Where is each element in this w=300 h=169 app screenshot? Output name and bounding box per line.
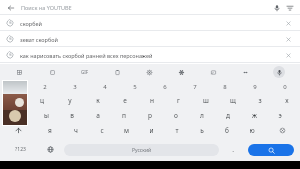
button[interactable]: скорбей bbox=[0, 15, 300, 31]
staticText: л bbox=[200, 111, 204, 120]
button[interactable]: а bbox=[85, 108, 111, 123]
staticText: . bbox=[232, 145, 234, 154]
button[interactable]: х bbox=[273, 93, 300, 108]
button[interactable]: Изменить размер bbox=[229, 64, 261, 80]
button[interactable]: ?123 bbox=[4, 140, 37, 159]
button[interactable]: GIF bbox=[69, 64, 101, 80]
button[interactable]: Стикеры bbox=[36, 64, 69, 80]
staticText: Русский bbox=[132, 147, 152, 154]
button[interactable]: 4 bbox=[90, 80, 120, 93]
button[interactable]: Голосовой поиск bbox=[270, 1, 283, 14]
staticText: ц bbox=[40, 96, 44, 105]
staticText: 3 bbox=[73, 83, 77, 91]
button[interactable]: 2 bbox=[30, 80, 60, 93]
staticText: щ bbox=[230, 96, 236, 105]
button[interactable]: ы bbox=[33, 108, 59, 123]
staticText: м bbox=[124, 126, 129, 135]
button[interactable]: 7 bbox=[180, 80, 210, 93]
button[interactable]: Буфер обмена bbox=[101, 64, 133, 80]
button[interactable]: г bbox=[165, 93, 192, 108]
staticText: в bbox=[70, 111, 74, 120]
button[interactable]: й bbox=[0, 93, 28, 108]
staticText: у bbox=[68, 96, 72, 105]
button[interactable]: Русский bbox=[64, 144, 219, 156]
staticText: 6 bbox=[163, 83, 167, 91]
button[interactable]: Настройки bbox=[133, 64, 165, 80]
button[interactable]: 8 bbox=[210, 80, 240, 93]
staticText: Поиск на YOUTUBE bbox=[21, 4, 270, 11]
button[interactable]: щ bbox=[219, 93, 246, 108]
button[interactable]: 6 bbox=[150, 80, 180, 93]
button[interactable]: ф bbox=[7, 108, 33, 123]
staticText: ь bbox=[200, 126, 204, 135]
button[interactable]: Голосовой ввод bbox=[261, 64, 297, 80]
button[interactable]: Темы bbox=[3, 64, 36, 80]
button[interactable]: 0 bbox=[270, 80, 300, 93]
button[interactable]: у bbox=[56, 93, 84, 108]
button[interactable]: я bbox=[37, 123, 63, 138]
button[interactable]: п bbox=[111, 108, 137, 123]
staticText: с bbox=[100, 126, 104, 135]
staticText: ч bbox=[74, 126, 78, 135]
button[interactable]: е bbox=[111, 93, 138, 108]
staticText: скорбей bbox=[20, 20, 282, 27]
staticText: 8 bbox=[223, 83, 227, 91]
staticText: я bbox=[48, 126, 52, 135]
staticText: х bbox=[285, 96, 289, 105]
staticText: зеват скорбой bbox=[20, 36, 282, 43]
staticText: ф bbox=[18, 111, 23, 120]
button[interactable]: т bbox=[164, 123, 189, 138]
button[interactable]: р bbox=[137, 108, 163, 123]
staticText: 9 bbox=[253, 83, 257, 91]
button[interactable]: о bbox=[163, 108, 189, 123]
button[interactable]: ц bbox=[28, 93, 56, 108]
staticText: е bbox=[123, 96, 127, 105]
staticText: й bbox=[12, 96, 17, 105]
staticText: GIF bbox=[81, 69, 89, 75]
button[interactable]: д bbox=[215, 108, 241, 123]
button[interactable]: б bbox=[214, 123, 239, 138]
staticText: н bbox=[150, 96, 154, 105]
button[interactable]: Эмодзи bbox=[165, 64, 197, 80]
button[interactable]: ь bbox=[189, 123, 214, 138]
button[interactable]: Назад bbox=[4, 1, 17, 14]
button[interactable]: 1 bbox=[0, 80, 30, 93]
button[interactable]: Удалить bbox=[282, 49, 294, 61]
button[interactable]: Перевод bbox=[197, 64, 229, 80]
button[interactable]: Изображение из буфера обмена bbox=[3, 81, 27, 125]
button[interactable]: к bbox=[84, 93, 111, 108]
button[interactable]: в bbox=[59, 108, 85, 123]
button[interactable]: ю bbox=[239, 123, 264, 138]
button[interactable]: Трансляция bbox=[283, 1, 296, 14]
button[interactable]: зеват скорбой bbox=[0, 31, 300, 47]
button[interactable]: л bbox=[189, 108, 215, 123]
staticText: ю bbox=[249, 126, 255, 135]
staticText: ж bbox=[252, 111, 257, 120]
button[interactable]: 3 bbox=[60, 80, 90, 93]
staticText: ш bbox=[203, 96, 209, 105]
button[interactable]: Поиск bbox=[248, 144, 294, 156]
staticText: к bbox=[96, 96, 100, 105]
staticText: р bbox=[148, 111, 152, 120]
button[interactable]: Shift bbox=[0, 123, 37, 138]
button[interactable]: ж bbox=[241, 108, 267, 123]
button[interactable]: и bbox=[139, 123, 164, 138]
button[interactable]: Удалить bbox=[282, 17, 294, 29]
button[interactable]: 9 bbox=[240, 80, 270, 93]
button[interactable]: как нарисовать скорбой ранней всех персо… bbox=[0, 47, 300, 63]
button[interactable]: э bbox=[267, 108, 293, 123]
button[interactable]: Сменить язык bbox=[37, 140, 64, 159]
staticText: п bbox=[122, 111, 126, 120]
button[interactable]: з bbox=[246, 93, 273, 108]
button[interactable]: с bbox=[89, 123, 114, 138]
button[interactable]: н bbox=[138, 93, 165, 108]
staticText: о bbox=[174, 111, 178, 120]
button[interactable]: Удалить bbox=[282, 33, 294, 45]
staticText: ы bbox=[44, 111, 49, 120]
button[interactable]: Удалить bbox=[264, 123, 300, 138]
button[interactable]: ш bbox=[192, 93, 219, 108]
button[interactable]: ч bbox=[63, 123, 89, 138]
button[interactable]: 5 bbox=[120, 80, 150, 93]
button[interactable]: м bbox=[114, 123, 139, 138]
